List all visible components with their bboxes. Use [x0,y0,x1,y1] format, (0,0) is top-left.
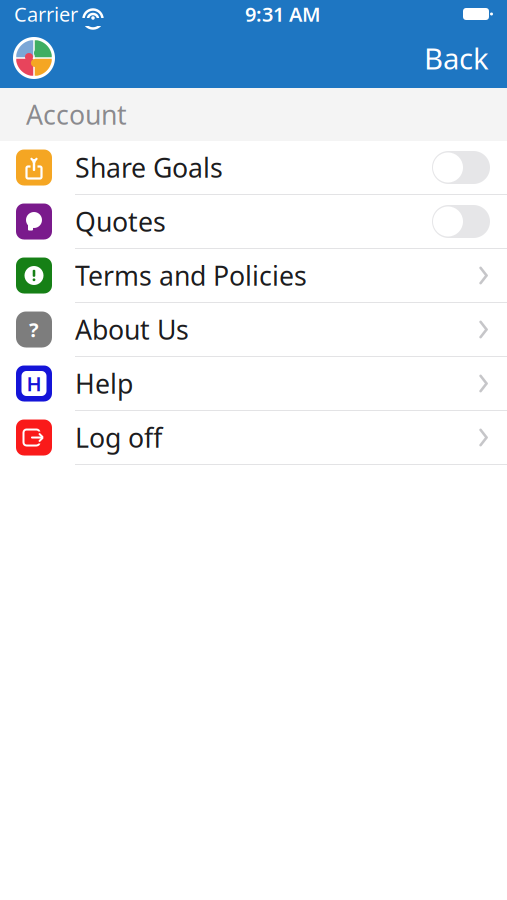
button[interactable]: H [0,357,507,411]
staticText: Log off [75,420,162,455]
staticText: Account [26,97,127,132]
staticText: Help [75,366,133,401]
staticText: Carrier [14,1,78,27]
staticText: About Us [75,312,189,347]
button[interactable]: Home [0,32,55,84]
button[interactable]: Quotes [0,195,507,249]
staticText: Quotes [75,204,166,239]
staticText: H [26,370,41,397]
staticText: ? [29,316,39,343]
button[interactable]: Log off [0,411,507,465]
button[interactable]: ? [0,303,507,357]
button[interactable]: Terms and Policies [0,249,507,303]
staticText: 9:31 AM [245,1,321,27]
staticText: Terms and Policies [75,258,307,293]
staticText: Share Goals [75,150,223,185]
button[interactable]: Share Goals [0,141,507,195]
button[interactable]: Back [424,28,507,87]
staticText: Back [424,38,489,77]
